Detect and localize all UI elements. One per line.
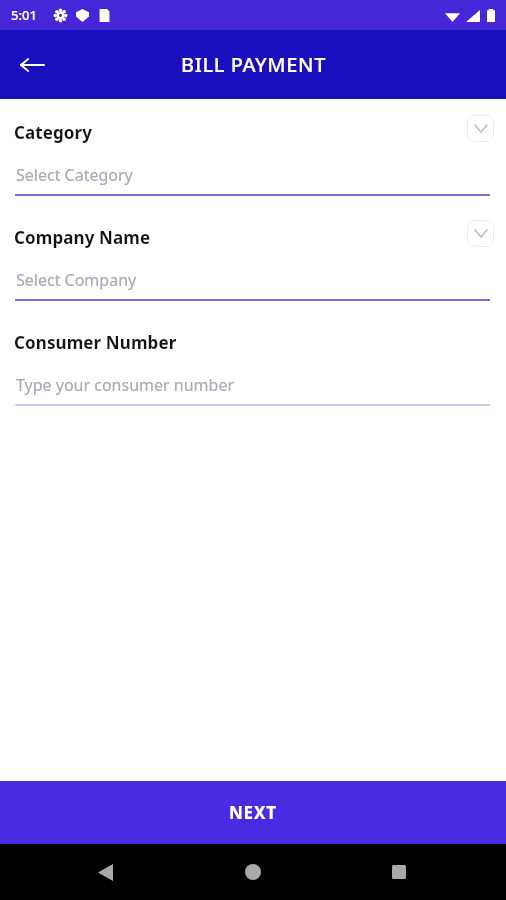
staticText: Company Name [14,226,151,249]
button[interactable]: Expand Company Name [467,220,494,247]
button[interactable]: Back [85,852,125,892]
staticText: 5:01 [11,6,37,24]
button[interactable]: Home [233,852,273,892]
button[interactable]: Expand Category [467,115,494,142]
button[interactable]: Back [10,43,54,87]
staticText: Type your consumer number [16,374,235,396]
button[interactable]: Select Company [0,265,506,295]
staticText: NEXT [229,801,277,824]
staticText: Select Company [16,269,137,291]
staticText: Consumer Number [14,331,177,354]
button[interactable]: Select Category [0,160,506,190]
button[interactable]: Type your consumer number [0,370,506,400]
staticText: BILL PAYMENT [181,51,326,78]
button[interactable]: NEXT [0,781,506,844]
staticText: Select Category [16,164,133,186]
staticText: Category [14,121,93,144]
button[interactable]: Recent apps [379,852,419,892]
